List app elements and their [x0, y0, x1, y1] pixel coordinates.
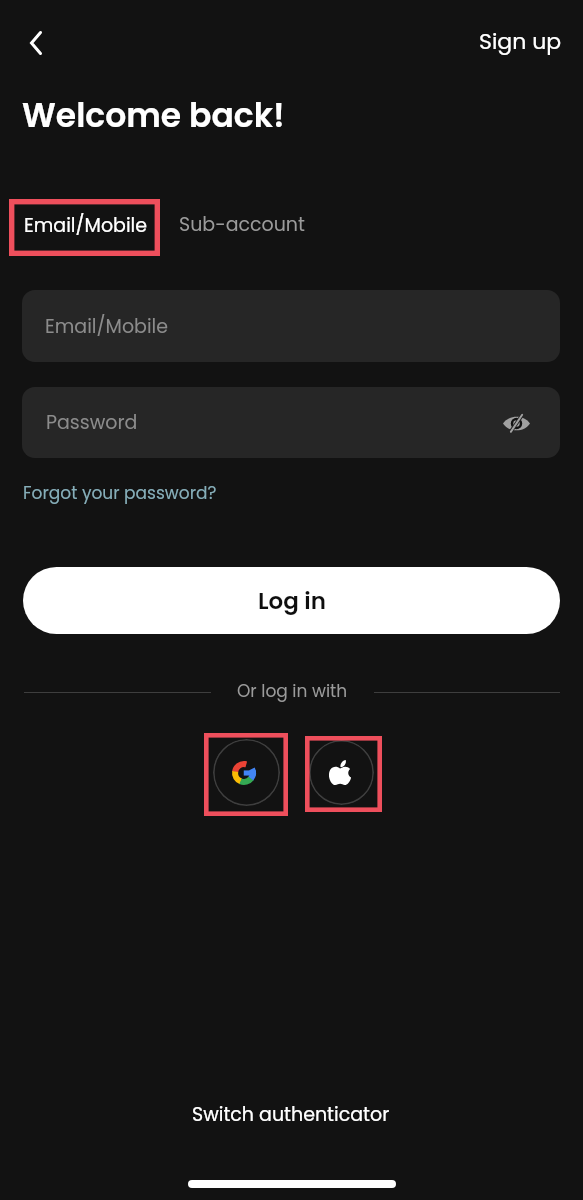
button[interactable]: Email/Mobile [22, 290, 560, 362]
staticText: Sub-account [179, 211, 305, 238]
button[interactable]: Sign in with Apple [309, 740, 374, 805]
button[interactable]: Password [22, 387, 560, 458]
button[interactable]: Back [13, 18, 61, 66]
staticText: Password [46, 409, 138, 436]
button[interactable]: Switch authenticator [182, 1094, 400, 1135]
staticText: Welcome back! [22, 92, 285, 138]
button[interactable]: Show password [496, 403, 536, 443]
staticText: Log in [258, 585, 326, 617]
button[interactable]: Email/Mobile [14, 204, 159, 259]
staticText: Or log in with [237, 679, 348, 703]
button[interactable]: Sub-account [169, 203, 315, 246]
staticText: Email/Mobile [45, 313, 169, 340]
staticText: Email/Mobile [24, 212, 148, 239]
button[interactable]: Log in [23, 567, 560, 634]
staticText: Switch authenticator [192, 1101, 390, 1128]
staticText: Forgot your password? [23, 481, 217, 505]
button[interactable]: Forgot your password? [17, 475, 223, 511]
button[interactable]: Sign in with Google [213, 739, 280, 806]
button[interactable]: Sign up [469, 16, 572, 67]
staticText: Sign up [479, 26, 562, 57]
